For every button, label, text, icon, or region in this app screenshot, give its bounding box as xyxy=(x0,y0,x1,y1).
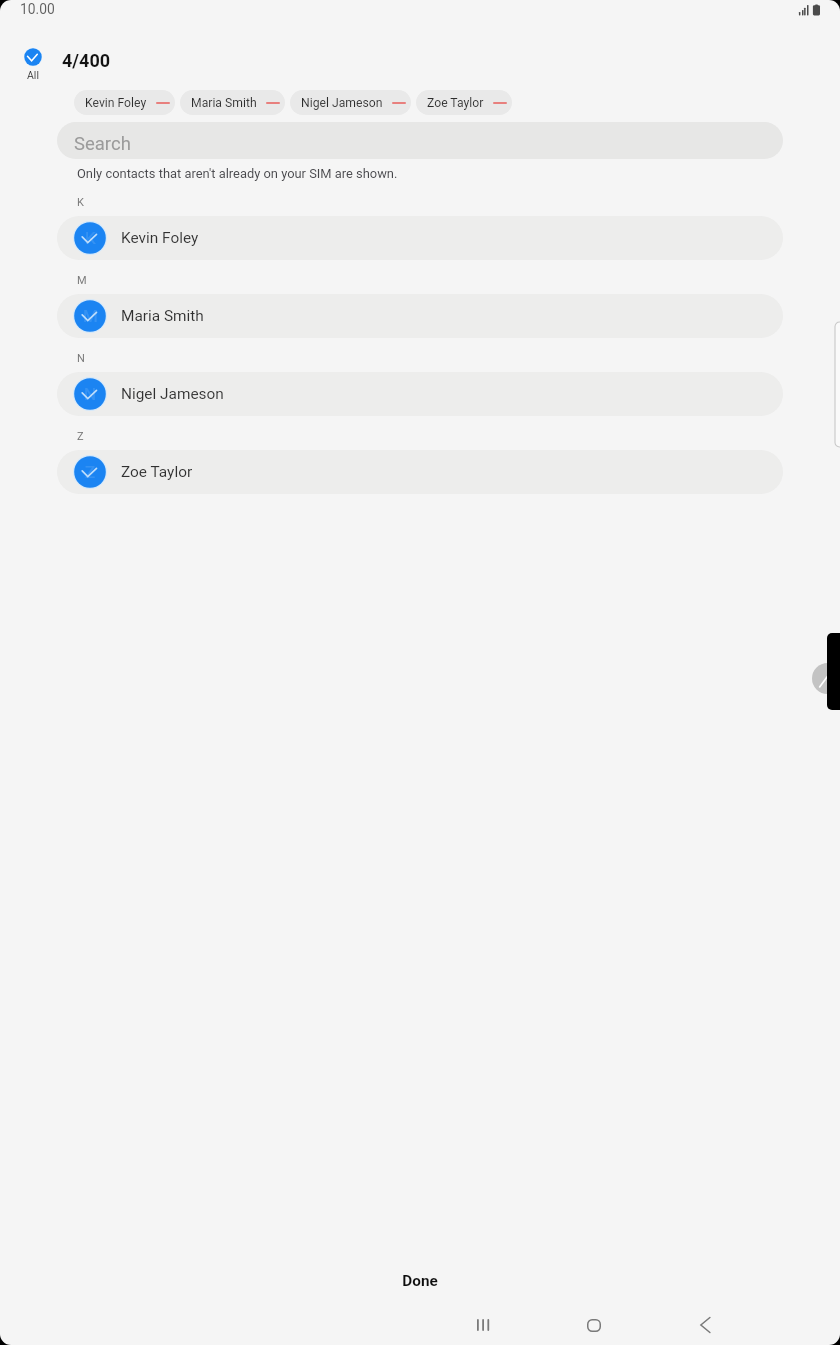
button[interactable]: Z xyxy=(57,450,783,494)
staticText: Z xyxy=(77,430,84,443)
staticText: Maria Smith xyxy=(191,96,257,110)
staticText: Nigel Jameson xyxy=(121,385,224,403)
staticText: Maria Smith xyxy=(121,307,204,325)
staticText: K xyxy=(77,196,84,209)
button[interactable]: Select all contacts xyxy=(16,44,49,74)
button[interactable]: M xyxy=(57,294,783,338)
staticText: 4/400 xyxy=(62,50,111,71)
button[interactable]: Kevin Foley xyxy=(74,90,175,115)
staticText: K xyxy=(85,228,96,248)
staticText: Done xyxy=(402,1272,438,1290)
button[interactable]: Nigel Jameson xyxy=(290,90,411,115)
button[interactable]: Open edge panel xyxy=(812,663,840,694)
button[interactable]: Search xyxy=(57,122,783,159)
button[interactable]: Back xyxy=(673,1305,737,1345)
staticText: Zoe Taylor xyxy=(121,463,193,481)
button[interactable]: Maria Smith xyxy=(180,90,285,115)
staticText: M xyxy=(77,274,87,287)
staticText: Kevin Foley xyxy=(85,96,147,110)
staticText: Z xyxy=(85,462,96,482)
staticText: 10.00 xyxy=(20,1,55,17)
staticText: N xyxy=(84,384,97,404)
staticText: All xyxy=(27,69,39,81)
staticText: M xyxy=(83,306,98,326)
button[interactable]: Home xyxy=(562,1305,626,1345)
staticText: N xyxy=(77,352,85,365)
button[interactable]: Recent apps xyxy=(451,1305,515,1345)
staticText: Nigel Jameson xyxy=(301,96,383,110)
staticText: Zoe Taylor xyxy=(427,96,484,110)
button[interactable]: Zoe Taylor xyxy=(416,90,512,115)
staticText: Kevin Foley xyxy=(121,229,199,247)
staticText: Only contacts that aren't already on you… xyxy=(77,166,398,181)
button[interactable]: Done xyxy=(0,1256,840,1306)
staticText: Search xyxy=(74,133,131,155)
button[interactable]: K xyxy=(57,216,783,260)
button[interactable]: N xyxy=(57,372,783,416)
